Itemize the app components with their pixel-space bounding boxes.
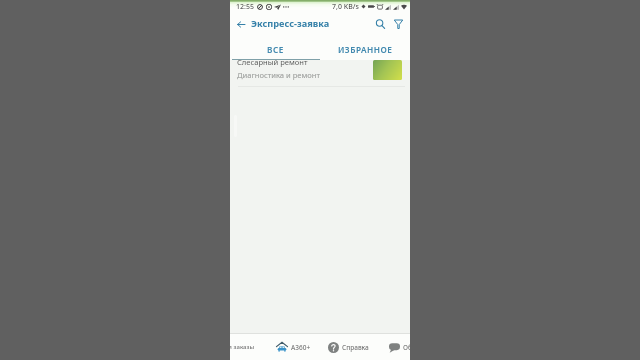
- staticText: Мои заказы: [230, 343, 255, 351]
- staticText: ВСЕ: [267, 44, 284, 55]
- staticText: ИЗБРАННОЕ: [338, 44, 393, 55]
- staticText: 7,0 KB/s: [332, 2, 359, 12]
- staticText: Диагностика и ремонт: [237, 70, 321, 80]
- button[interactable]: Мои заказы: [230, 334, 255, 360]
- button[interactable]: Справка: [327, 334, 369, 360]
- button[interactable]: Обратная: [385, 334, 410, 360]
- button[interactable]: Back: [234, 15, 248, 33]
- staticText: Слесарный ремонт: [237, 57, 308, 67]
- staticText: А360+: [291, 343, 311, 352]
- button[interactable]: Search: [372, 16, 388, 32]
- staticText: Справка: [342, 343, 369, 352]
- staticText: Экспресс-заявка: [251, 17, 330, 30]
- button[interactable]: А360+: [271, 334, 315, 360]
- button[interactable]: Filter: [390, 16, 406, 32]
- button[interactable]: ВСЕ: [230, 36, 320, 62]
- staticText: Обратная: [403, 343, 410, 352]
- button[interactable]: Слесарный ремонт: [230, 60, 410, 86]
- staticText: 12:55: [236, 2, 254, 12]
- button[interactable]: ИЗБРАННОЕ: [320, 36, 410, 62]
